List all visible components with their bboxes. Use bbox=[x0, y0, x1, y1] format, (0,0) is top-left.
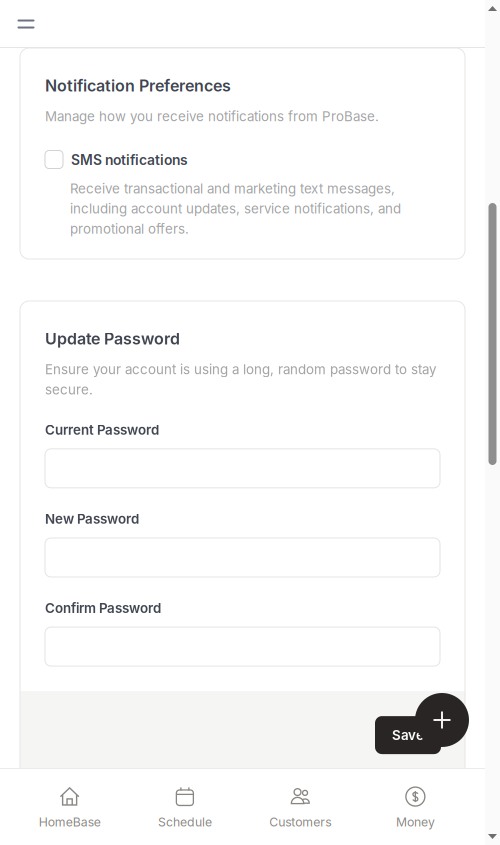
staticText: Save bbox=[392, 727, 424, 743]
staticText: Customers bbox=[269, 815, 331, 829]
button[interactable]: Schedule bbox=[127, 767, 242, 845]
staticText: Confirm Password bbox=[45, 600, 161, 616]
staticText: Receive transactional and marketing text… bbox=[70, 178, 401, 239]
button[interactable]: Add bbox=[415, 693, 469, 747]
button[interactable]: Save bbox=[375, 716, 441, 754]
staticText: Update Password bbox=[45, 329, 180, 348]
button[interactable]: Customers bbox=[242, 767, 358, 845]
button[interactable]: SMS notifications bbox=[45, 150, 440, 168]
staticText: Schedule bbox=[158, 815, 212, 829]
staticText: New Password bbox=[45, 511, 139, 527]
button[interactable]: Open menu bbox=[9, 7, 43, 41]
staticText: Ensure your account is using a long, ran… bbox=[45, 359, 436, 400]
staticText: HomeBase bbox=[39, 815, 101, 829]
staticText: Money bbox=[396, 815, 435, 829]
staticText: Manage how you receive notifications fro… bbox=[45, 106, 379, 127]
staticText: Notification Preferences bbox=[45, 76, 231, 95]
button[interactable]: HomeBase bbox=[12, 767, 127, 845]
staticText: Current Password bbox=[45, 422, 159, 438]
staticText: SMS notifications bbox=[71, 151, 188, 168]
button[interactable]: Money bbox=[358, 767, 473, 845]
